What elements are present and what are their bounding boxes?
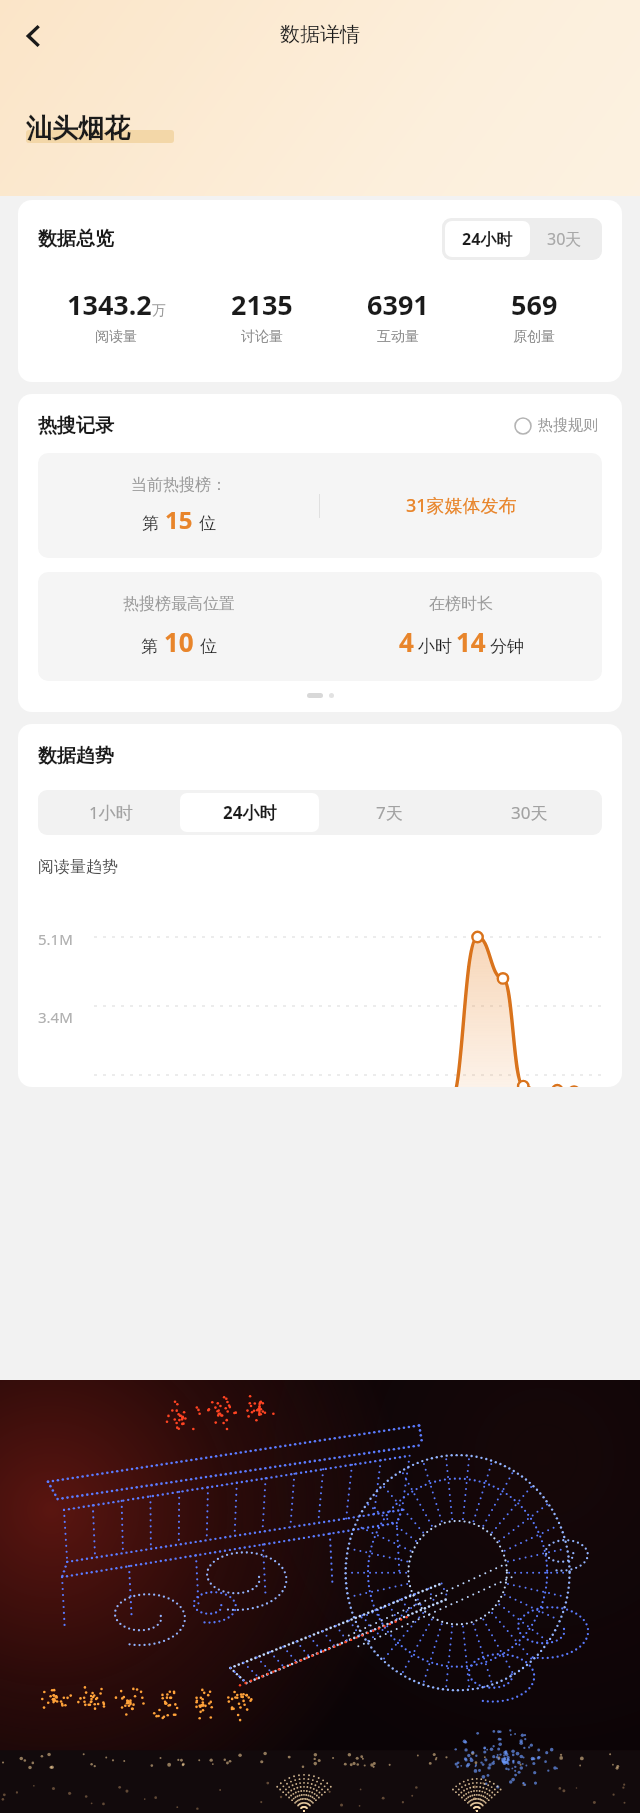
button[interactable]: 24小时 bbox=[445, 221, 530, 257]
staticText: 30天 bbox=[547, 228, 582, 250]
staticText: 热搜规则 bbox=[538, 416, 598, 435]
staticText: 位 bbox=[200, 636, 217, 657]
staticText: 569 bbox=[511, 286, 558, 323]
staticText: 原创量 bbox=[513, 328, 555, 346]
staticText: 数据总览 bbox=[38, 227, 114, 251]
button[interactable]: 热搜规则 bbox=[510, 412, 602, 439]
staticText: 10 bbox=[164, 624, 194, 659]
staticText: 1343.2 bbox=[67, 286, 152, 323]
staticText: 在榜时长 bbox=[429, 594, 493, 614]
staticText: 4 bbox=[399, 624, 414, 659]
staticText: 15 bbox=[165, 503, 193, 536]
staticText: 互动量 bbox=[377, 328, 419, 346]
staticText: 第 bbox=[141, 636, 158, 657]
staticText: 7天 bbox=[376, 801, 403, 824]
staticText: 讨论量 bbox=[241, 328, 283, 346]
button[interactable]: 7天 bbox=[319, 793, 459, 832]
staticText: 30天 bbox=[511, 801, 548, 824]
staticText: 1小时 bbox=[89, 801, 133, 824]
staticText: 6391 bbox=[367, 286, 429, 323]
staticText: 当前热搜榜： bbox=[131, 475, 227, 495]
staticText: 14 bbox=[456, 624, 486, 659]
staticText: 第 bbox=[142, 513, 159, 534]
staticText: 位 bbox=[199, 513, 216, 534]
staticText: 24小时 bbox=[223, 801, 277, 824]
button[interactable]: 1小时 bbox=[41, 793, 180, 832]
staticText: 汕头烟花 bbox=[26, 112, 130, 145]
button[interactable]: 30天 bbox=[530, 221, 599, 257]
staticText: 数据详情 bbox=[280, 22, 360, 47]
staticText: 3.4M bbox=[38, 1007, 73, 1027]
staticText: 5.1M bbox=[38, 929, 73, 949]
staticText: 24小时 bbox=[462, 228, 513, 250]
button[interactable]: Back bbox=[6, 8, 62, 64]
staticText: 阅读量 bbox=[95, 328, 137, 346]
staticText: 阅读量趋势 bbox=[38, 857, 118, 877]
staticText: 万 bbox=[152, 302, 166, 320]
button[interactable]: 30天 bbox=[459, 793, 599, 832]
staticText: 数据趋势 bbox=[38, 744, 114, 768]
staticText: 热搜记录 bbox=[38, 414, 114, 438]
staticText: 热搜榜最高位置 bbox=[123, 594, 235, 614]
button[interactable]: 24小时 bbox=[180, 793, 319, 832]
staticText: 31家媒体发布 bbox=[406, 493, 517, 518]
staticText: 小时 bbox=[418, 636, 452, 657]
staticText: 分钟 bbox=[490, 636, 524, 657]
staticText: 2135 bbox=[231, 286, 293, 323]
